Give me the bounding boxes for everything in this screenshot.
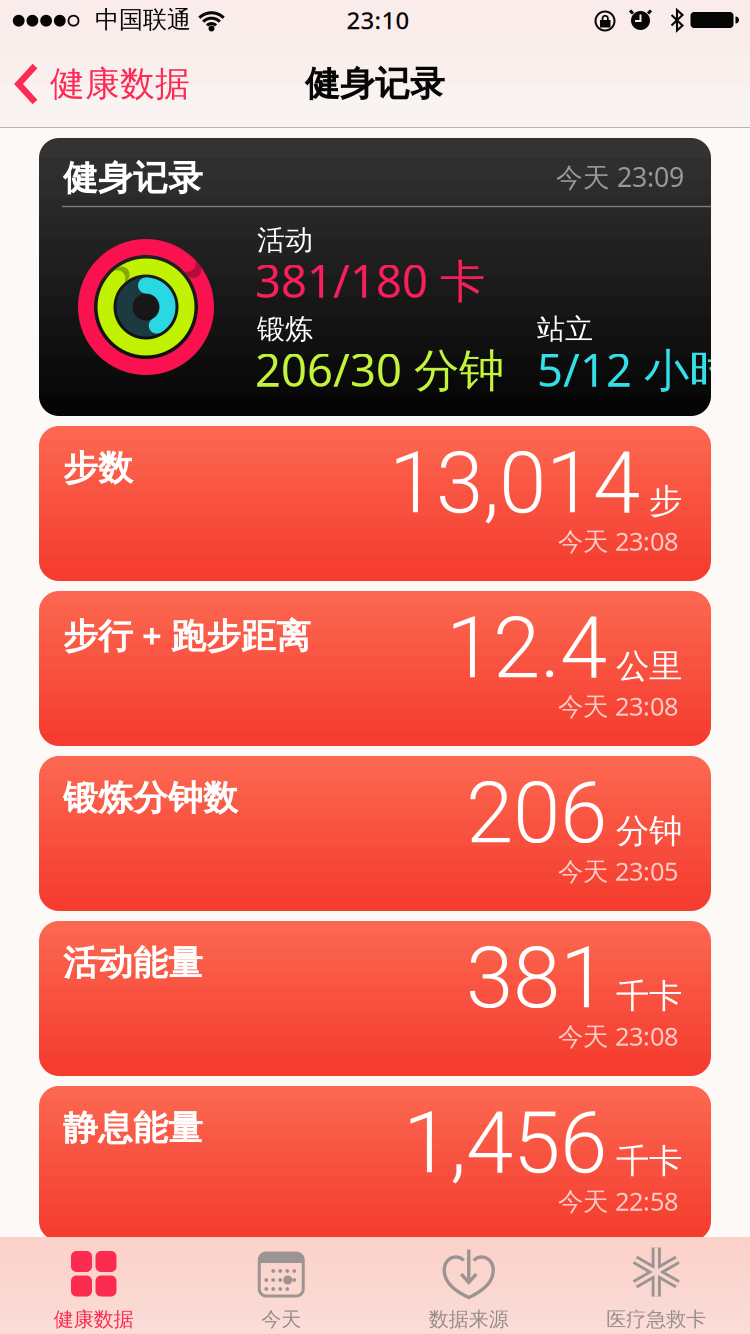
staticText: 活动能量 (63, 942, 203, 985)
staticText: 健康数据 (50, 63, 190, 105)
button[interactable]: 健康数据 (0, 1237, 187, 1334)
button[interactable]: 医疗急救卡 (562, 1237, 750, 1334)
staticText: 今天 23:08 (558, 1019, 678, 1053)
staticText: 公里 (616, 646, 682, 686)
staticText: 健身记录 (63, 157, 203, 200)
staticText: 锻炼分钟数 (63, 777, 238, 820)
staticText: 站立 (537, 312, 593, 346)
staticText: 医疗急救卡 (606, 1307, 706, 1332)
staticText: 5/12 小时 (537, 339, 734, 399)
staticText: 健康数据 (54, 1307, 134, 1332)
staticText: 1,456 (403, 1093, 607, 1193)
staticText: 数据来源 (429, 1307, 509, 1332)
staticText: 206 (466, 763, 607, 863)
button[interactable]: 健身记录 (39, 138, 711, 416)
button[interactable]: 活动能量 (39, 921, 711, 1076)
staticText: 分钟 (616, 811, 682, 851)
button[interactable]: 步行 + 跑步距离 (39, 591, 711, 746)
staticText: 步数 (63, 447, 133, 490)
staticText: 步 (649, 481, 682, 521)
staticText: 13,014 (389, 433, 640, 533)
button[interactable]: 步数 (39, 426, 711, 581)
staticText: 今天 23:08 (558, 524, 678, 558)
staticText: 今天 23:08 (558, 689, 678, 723)
staticText: 381/180 卡 (255, 250, 485, 310)
staticText: 12.4 (446, 598, 607, 698)
button[interactable]: 数据来源 (375, 1237, 562, 1334)
staticText: 今天 22:58 (558, 1184, 678, 1218)
staticText: 中国联通 (95, 5, 191, 34)
staticText: 锻炼 (257, 312, 313, 346)
staticText: 今天 (261, 1307, 301, 1332)
staticText: 步行 + 跑步距离 (63, 612, 311, 658)
staticText: 活动 (257, 223, 313, 257)
button[interactable]: 静息能量 (39, 1086, 711, 1241)
staticText: 千卡 (616, 976, 682, 1016)
staticText: 今天 23:05 (558, 854, 678, 888)
staticText: 静息能量 (63, 1107, 203, 1150)
button[interactable]: 健康数据 (0, 63, 190, 105)
staticText: 千卡 (616, 1141, 682, 1181)
staticText: 206/30 分钟 (255, 339, 504, 399)
staticText: 今天 23:09 (556, 159, 684, 194)
staticText: 381 (466, 928, 607, 1028)
staticText: 健身记录 (305, 63, 445, 105)
staticText: 23:10 (346, 4, 409, 36)
button[interactable]: 今天 (187, 1237, 375, 1334)
button[interactable]: 锻炼分钟数 (39, 756, 711, 911)
